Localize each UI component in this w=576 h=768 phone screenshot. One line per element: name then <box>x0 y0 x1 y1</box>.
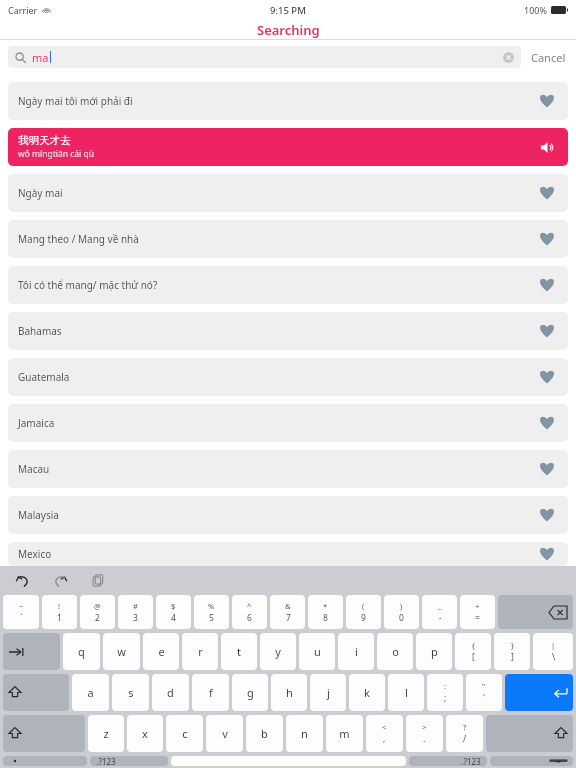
button[interactable]: : <box>427 674 463 711</box>
button[interactable]: { <box>455 633 491 670</box>
button[interactable]: Mang theo / Mang về nhà <box>8 220 568 258</box>
staticText: e <box>158 644 165 659</box>
button[interactable]: Favorite <box>536 228 558 250</box>
button[interactable]: Malaysia <box>8 496 568 534</box>
staticText: 6 <box>247 612 252 624</box>
button[interactable]: Redo <box>50 570 70 590</box>
button[interactable]: Favorite <box>536 543 558 565</box>
button[interactable]: x <box>127 715 163 752</box>
staticText: n <box>301 726 308 741</box>
button[interactable]: .?123 <box>90 756 168 766</box>
button[interactable]: ma <box>8 46 521 68</box>
button[interactable]: q <box>63 633 100 670</box>
button[interactable]: v <box>206 715 243 752</box>
button[interactable]: d <box>152 674 189 711</box>
button[interactable]: l <box>388 674 424 711</box>
staticText: ? <box>463 722 467 732</box>
button[interactable]: Macau <box>8 450 568 488</box>
button[interactable]: ! <box>42 595 77 629</box>
button[interactable]: Favorite <box>536 366 558 388</box>
button[interactable]: h <box>271 674 307 711</box>
staticText: = <box>475 612 480 624</box>
button[interactable]: Ngày mai <box>8 174 568 212</box>
button[interactable]: o <box>377 633 413 670</box>
button[interactable]: Tab <box>3 633 60 670</box>
button[interactable]: g <box>232 674 268 711</box>
staticText: i <box>355 644 358 659</box>
button[interactable]: Shift <box>3 674 69 711</box>
button[interactable]: s <box>112 674 149 711</box>
button[interactable]: " <box>466 674 502 711</box>
button[interactable]: Tôi có thể mang/ mặc thử nó? <box>8 266 568 304</box>
staticText: Mexico <box>18 547 52 561</box>
button[interactable]: & <box>270 595 305 629</box>
button[interactable]: Cancel <box>529 46 568 69</box>
button[interactable]: > <box>406 715 443 752</box>
button[interactable]: _ <box>422 595 457 629</box>
button[interactable]: b <box>246 715 283 752</box>
button[interactable]: a <box>72 674 109 711</box>
button[interactable]: u <box>299 633 335 670</box>
button[interactable]: } <box>494 633 530 670</box>
button[interactable]: j <box>310 674 346 711</box>
button[interactable]: < <box>366 715 403 752</box>
button[interactable]: k <box>349 674 385 711</box>
button[interactable]: Backspace <box>498 595 573 629</box>
button[interactable]: Clear text <box>503 52 514 63</box>
staticText: Searching <box>257 21 320 39</box>
button[interactable]: c <box>166 715 203 752</box>
button[interactable]: Shift <box>3 715 85 752</box>
button[interactable]: Favorite <box>536 320 558 342</box>
button[interactable]: Favorite <box>536 90 558 112</box>
button[interactable]: # <box>118 595 153 629</box>
button[interactable]: r <box>182 633 218 670</box>
button[interactable]: Favorite <box>536 458 558 480</box>
button[interactable]: Mexico <box>8 542 568 566</box>
button[interactable]: Hide keyboard <box>490 756 573 766</box>
button[interactable]: Jamaica <box>8 404 568 442</box>
button[interactable]: + <box>460 595 495 629</box>
button[interactable]: w <box>103 633 140 670</box>
button[interactable]: 我明天才去 <box>8 128 568 166</box>
button[interactable]: p <box>416 633 452 670</box>
button[interactable]: e <box>143 633 179 670</box>
button[interactable]: ? <box>446 715 483 752</box>
button[interactable]: m <box>326 715 363 752</box>
button[interactable]: n <box>286 715 323 752</box>
button[interactable]: Paste <box>88 570 108 590</box>
staticText: " <box>482 681 486 691</box>
button[interactable]: Return <box>505 674 573 711</box>
button[interactable]: ) <box>384 595 419 629</box>
staticText: 9:15 PM <box>270 4 306 17</box>
button[interactable]: Favorite <box>536 274 558 296</box>
staticText: + <box>475 601 480 611</box>
button[interactable]: Favorite <box>536 182 558 204</box>
button[interactable]: t <box>221 633 257 670</box>
button[interactable]: Bahamas <box>8 312 568 350</box>
button[interactable]: @ <box>80 595 115 629</box>
button[interactable]: f <box>192 674 229 711</box>
button[interactable]: | <box>533 633 573 670</box>
button[interactable]: ( <box>346 595 381 629</box>
button[interactable]: Switch keyboard language <box>3 756 87 766</box>
button[interactable]: Favorite <box>536 504 558 526</box>
button[interactable]: ^ <box>232 595 267 629</box>
button[interactable]: Guatemala <box>8 358 568 396</box>
button[interactable]: i <box>338 633 374 670</box>
button[interactable]: Favorite <box>536 412 558 434</box>
button[interactable]: * <box>308 595 343 629</box>
staticText: t <box>237 644 241 659</box>
button[interactable]: % <box>194 595 229 629</box>
button[interactable]: Ngày mai tôi mới phải đi <box>8 82 568 120</box>
staticText: Ngày mai tôi mới phải đi <box>18 94 133 108</box>
button[interactable]: y <box>260 633 296 670</box>
button[interactable]: Undo <box>12 570 32 590</box>
button[interactable]: $ <box>156 595 191 629</box>
button[interactable]: Play audio <box>536 136 558 158</box>
button[interactable]: Shift <box>486 715 573 752</box>
button[interactable]: ~ <box>3 595 39 629</box>
button[interactable]: .?123 <box>409 756 487 766</box>
button[interactable]: z <box>88 715 124 752</box>
staticText: ) <box>400 601 403 611</box>
